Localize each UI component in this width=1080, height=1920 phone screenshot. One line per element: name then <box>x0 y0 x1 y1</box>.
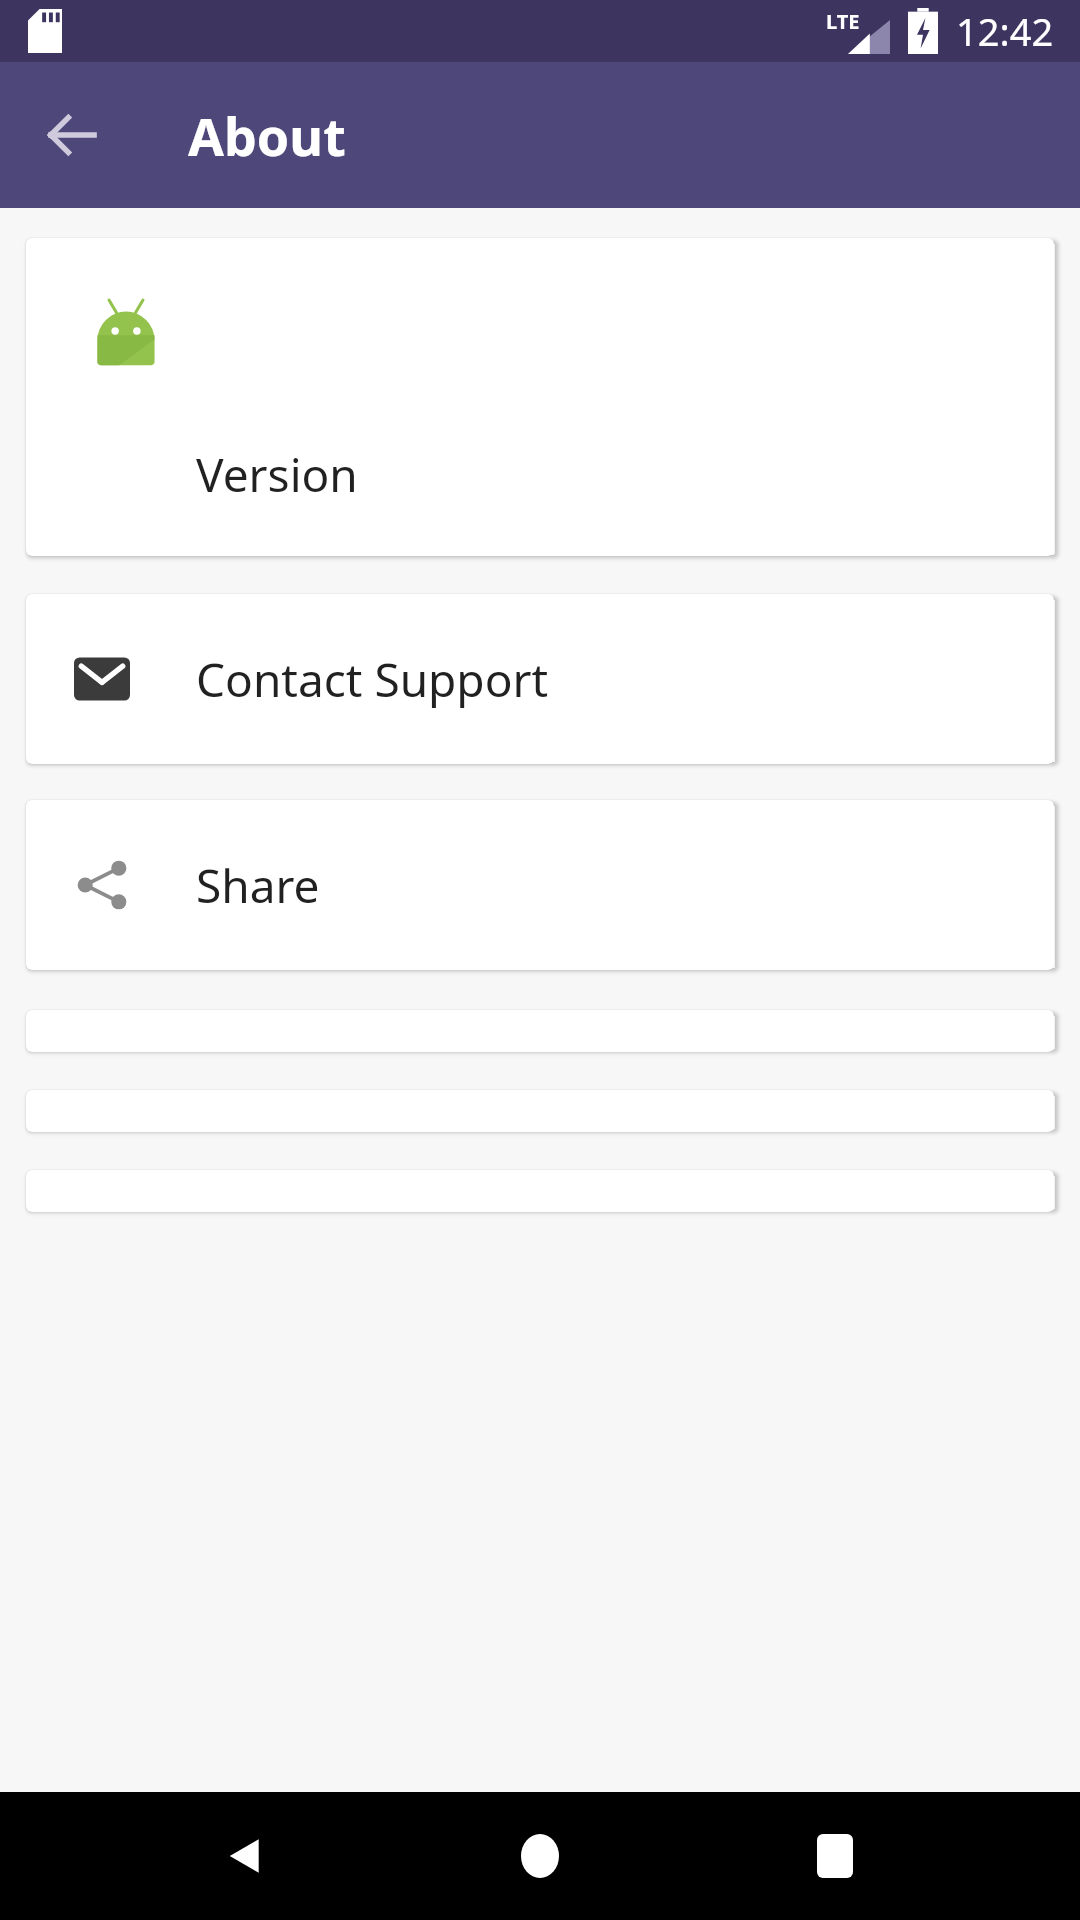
button[interactable]: Back <box>30 93 114 177</box>
button[interactable]: Version <box>26 238 1054 556</box>
button[interactable]: Recent apps <box>785 1806 885 1906</box>
button[interactable]: Share <box>26 800 1054 970</box>
staticText: 12:42 <box>956 5 1054 57</box>
button[interactable]: Contact Support <box>26 594 1054 764</box>
staticText: Share <box>196 854 320 917</box>
staticText: Version <box>196 443 358 506</box>
button[interactable]: Home <box>490 1806 590 1906</box>
button[interactable]: Back <box>195 1806 295 1906</box>
staticText: Contact Support <box>196 648 549 711</box>
staticText: LTE <box>826 8 860 35</box>
staticText: About <box>188 100 346 171</box>
